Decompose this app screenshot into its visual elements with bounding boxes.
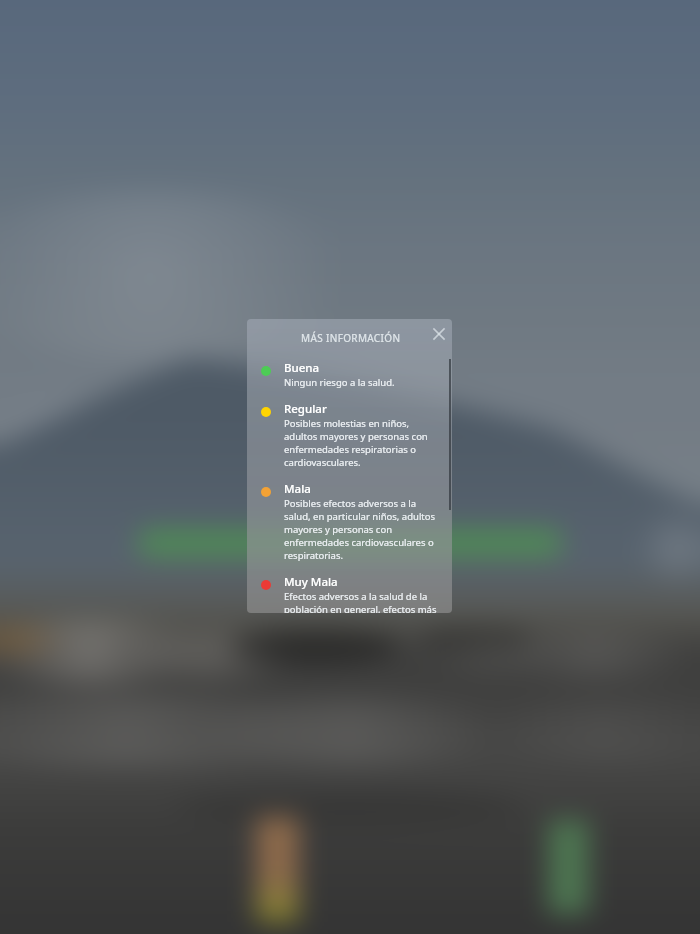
- staticText: Mala: [284, 481, 311, 497]
- staticText: Regular: [284, 401, 327, 417]
- staticText: Muy Mala: [284, 574, 338, 590]
- staticText: Ningun riesgo a la salud.: [284, 376, 395, 389]
- staticText: Posibles molestias en niños, adultos may…: [284, 417, 439, 469]
- staticText: Efectos adversos a la salud de la poblac…: [284, 590, 439, 613]
- staticText: Posibles efectos adversos a la salud, en…: [284, 497, 439, 562]
- staticText: MÁS INFORMACIÓN: [301, 331, 401, 345]
- button[interactable]: Cerrar: [427, 322, 451, 346]
- staticText: Buena: [284, 360, 320, 376]
